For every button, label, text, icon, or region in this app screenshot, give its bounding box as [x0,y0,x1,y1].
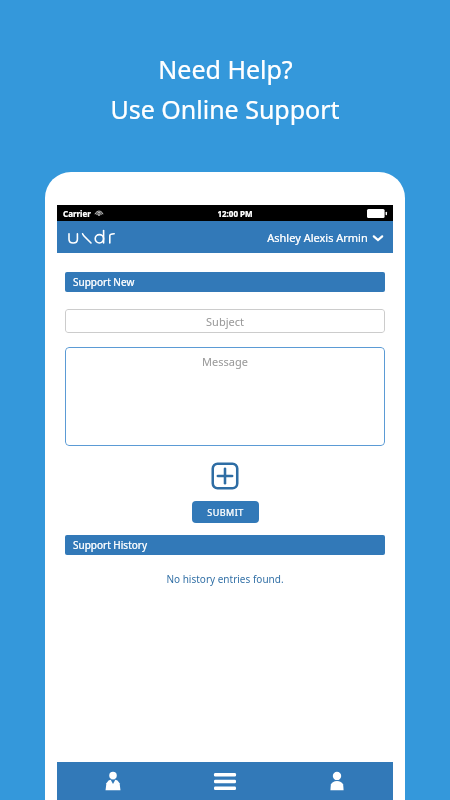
staticText: Support New [73,275,135,289]
staticText: Carrier [63,208,91,219]
button[interactable]: Subject [65,309,385,333]
staticText: 12:00 PM [217,208,253,219]
button[interactable]: Message [65,347,385,446]
staticText: Need Help? [158,52,293,86]
staticText: Ashley Alexis Armin [267,230,368,245]
staticText: Subject [206,314,244,329]
button[interactable]: Menu [169,762,281,800]
button[interactable]: SUBMIT [192,501,259,523]
other: undr logo [67,227,137,247]
staticText: Use Online Support [110,92,340,126]
staticText: SUBMIT [207,506,244,518]
staticText: Message [65,354,385,369]
button[interactable]: Support History [65,535,385,555]
button[interactable]: Profile [281,762,393,800]
button[interactable]: Ashley Alexis Armin [267,230,383,245]
staticText: No history entries found. [65,572,385,586]
staticText: Support History [73,538,148,552]
button[interactable]: Doctors [57,762,169,800]
button[interactable]: Add attachment [208,459,242,493]
button[interactable]: Support New [65,272,385,292]
